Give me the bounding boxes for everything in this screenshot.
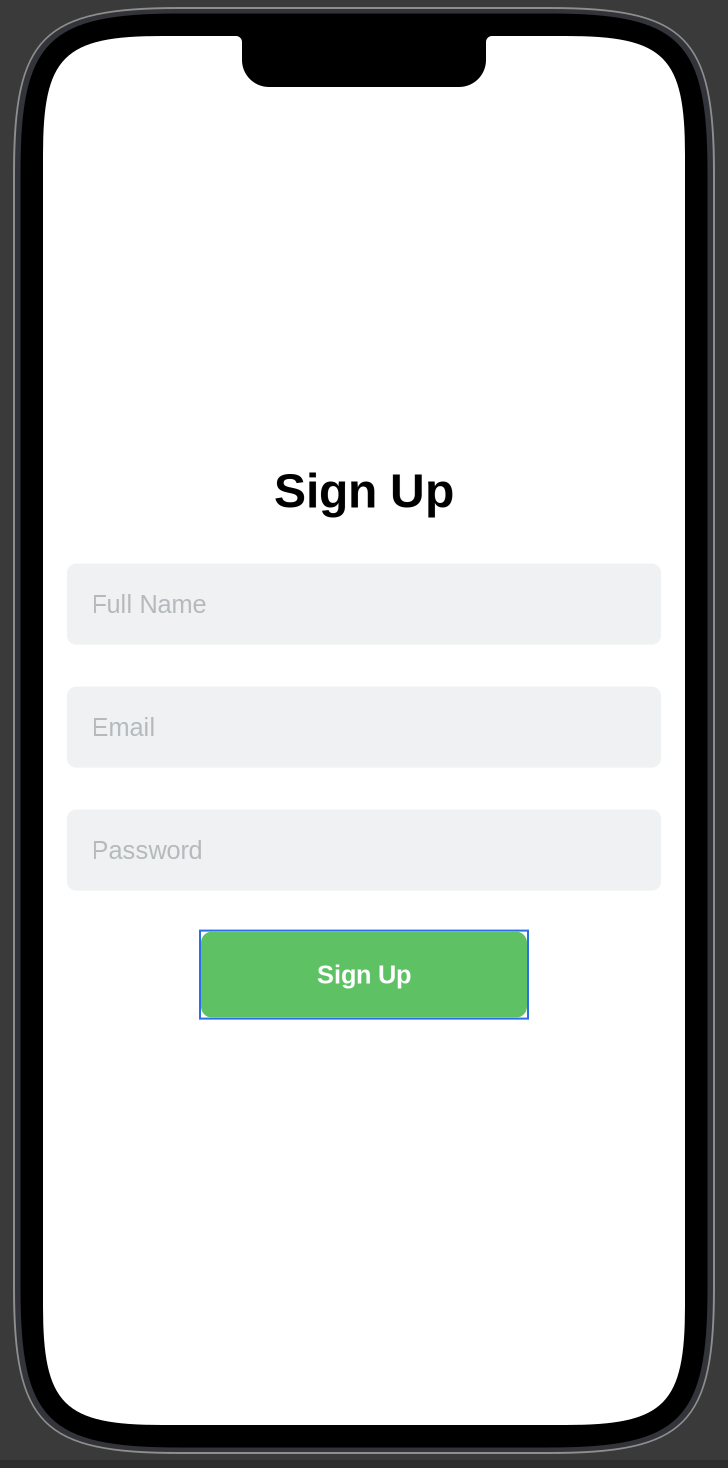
button[interactable]: Password bbox=[67, 810, 661, 891]
staticText: Password bbox=[91, 836, 202, 864]
staticText: Sign Up bbox=[317, 960, 411, 989]
button[interactable]: Sign Up bbox=[199, 930, 529, 1020]
staticText: Email bbox=[91, 713, 155, 741]
button[interactable]: Email bbox=[67, 687, 661, 768]
button[interactable]: Full Name bbox=[67, 564, 661, 645]
staticText: Sign Up bbox=[274, 464, 454, 518]
staticText: Full Name bbox=[91, 590, 206, 618]
